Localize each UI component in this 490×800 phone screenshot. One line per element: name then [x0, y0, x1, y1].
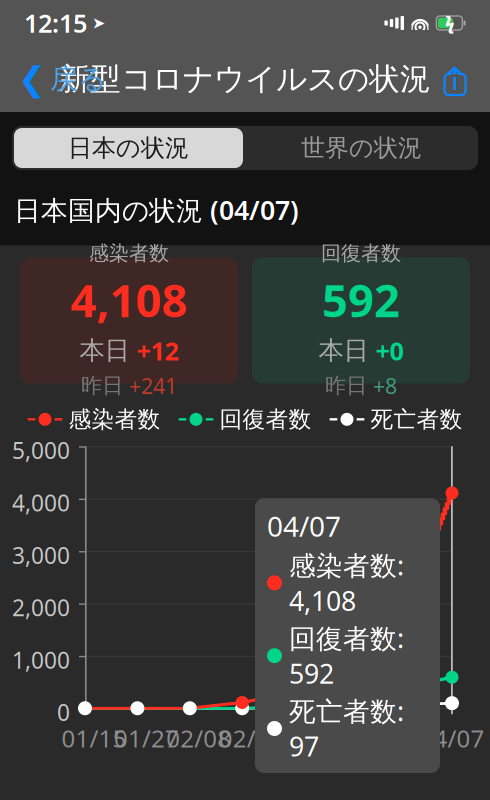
staticText: 1,000	[12, 645, 70, 675]
button[interactable]: 共有	[428, 54, 482, 104]
staticText: 01/27	[114, 722, 179, 754]
staticText: 回復者数: 592	[289, 620, 404, 691]
staticText: 戻る	[50, 62, 107, 96]
staticText: 日本の状況	[68, 133, 189, 163]
staticText: 昨日	[81, 372, 123, 399]
staticText: 3,000	[12, 540, 70, 570]
staticText: ➤	[92, 14, 105, 32]
staticText: 02/08	[166, 722, 231, 754]
staticText: 本日	[318, 335, 368, 366]
staticText: 世界の状況	[301, 133, 422, 163]
staticText: +12	[136, 334, 178, 367]
staticText: ϟ	[445, 11, 454, 34]
staticText: 0	[57, 697, 70, 727]
staticText: 回復者数	[321, 241, 401, 266]
staticText: 03/03	[271, 722, 336, 754]
staticText: 592	[322, 270, 400, 330]
staticText: 回復者数	[219, 405, 311, 433]
staticText: 新型コロナウイルスの状況	[59, 60, 431, 98]
staticText: 04/07	[419, 722, 484, 754]
staticText: 12:15	[24, 6, 87, 40]
staticText: 04/07	[267, 507, 341, 544]
button[interactable]: 世界の状況	[245, 126, 478, 170]
staticText: +8	[373, 371, 397, 400]
staticText: 本日	[79, 335, 129, 366]
staticText: 感染者数: 4,108	[289, 547, 404, 618]
staticText: 2,000	[12, 592, 70, 623]
staticText: 03/15	[323, 722, 388, 754]
staticText: 死亡者数	[370, 405, 462, 433]
staticText: 死亡者数: 97	[289, 693, 404, 764]
staticText: 01/15	[61, 722, 126, 754]
staticText: ↑	[441, 61, 468, 97]
staticText: 昨日	[325, 372, 367, 399]
staticText: 感染者数	[89, 241, 169, 266]
staticText: 4,108	[70, 270, 187, 330]
staticText: 感染者数	[68, 405, 160, 433]
button[interactable]: ❮	[8, 54, 117, 104]
staticText: 日本国内の状況 (04/07)	[14, 192, 299, 227]
staticText: +241	[129, 371, 177, 400]
button[interactable]: 日本の状況	[12, 126, 245, 170]
staticText: 5,000	[12, 435, 70, 465]
staticText: +0	[375, 334, 403, 367]
staticText: 4,000	[12, 488, 70, 518]
staticText: ❮	[18, 60, 46, 98]
staticText: 02/20	[219, 722, 284, 754]
